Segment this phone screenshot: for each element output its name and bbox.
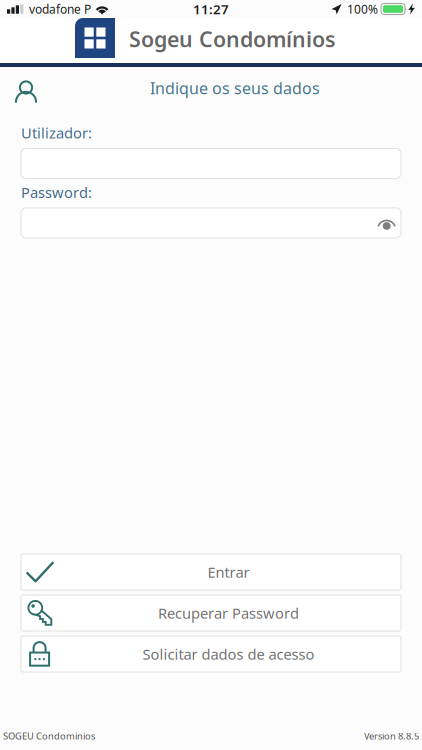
button[interactable]: Show password — [373, 208, 401, 238]
button[interactable]: Solicitar dados de acesso — [21, 636, 401, 672]
staticText: vodafone P — [29, 1, 91, 17]
button[interactable]: Recuperar Password — [21, 595, 401, 631]
staticText: Solicitar dados de acesso — [142, 644, 314, 664]
button[interactable]: Entrar — [21, 554, 401, 590]
button[interactable]: Utilizador — [21, 148, 401, 178]
button[interactable]: Password — [21, 208, 401, 238]
staticText: Entrar — [207, 562, 249, 582]
staticText: 11:27 — [193, 0, 229, 18]
staticText: 100% — [347, 1, 378, 17]
staticText: Version 8.8.5 — [364, 730, 419, 742]
staticText: Indique os seus dados — [150, 77, 320, 99]
staticText: Password: — [21, 182, 92, 202]
staticText: Recuperar Password — [158, 603, 299, 623]
staticText: SOGEU Condominios — [3, 730, 95, 742]
staticText: Utilizador: — [21, 123, 92, 142]
staticText: Sogeu Condomínios — [129, 25, 336, 53]
